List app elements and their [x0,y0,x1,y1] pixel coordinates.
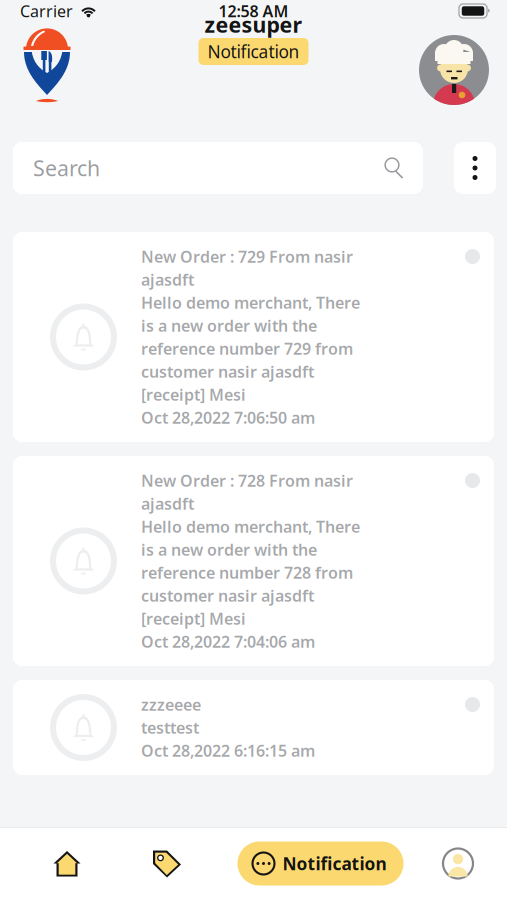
staticText: [receipt] Mesi [141,608,246,629]
button[interactable]: New Order : 728 From nasir [13,456,494,666]
button[interactable]: New Order : 729 From nasir [13,232,494,442]
button[interactable]: Account [424,831,492,895]
staticText: reference number 728 from [141,562,353,583]
staticText: ajasdft [141,493,194,514]
staticText: 12:58 AM [218,0,288,22]
staticText: Hello demo merchant, There [141,292,360,313]
staticText: is a new order with the [141,315,317,336]
staticText: Notification [207,40,299,63]
staticText: is a new order with the [141,539,317,560]
staticText: New Order : 728 From nasir [141,470,353,491]
staticText: Notification [282,852,386,875]
button[interactable]: zzzeeee [13,680,494,775]
button[interactable]: More options [454,142,496,194]
staticText: [receipt] Mesi [141,384,246,405]
button[interactable]: Profile [419,35,489,105]
staticText: customer nasir ajasdft [141,361,314,382]
staticText: ajasdft [141,269,194,290]
staticText: reference number 729 from [141,338,353,359]
staticText: customer nasir ajasdft [141,585,314,606]
staticText: zzzeeee [141,694,201,715]
staticText: testtest [141,717,199,738]
staticText: Oct 28,2022 7:06:50 am [141,407,315,428]
staticText: Oct 28,2022 6:16:15 am [141,740,315,761]
staticText: Carrier [20,0,73,22]
button[interactable]: Offers [117,831,217,895]
button[interactable]: Home [17,831,117,895]
staticText: Oct 28,2022 7:04:06 am [141,631,315,652]
staticText: Search [33,154,100,182]
button[interactable]: Search [13,142,423,194]
staticText: zeesuper [204,10,302,39]
button[interactable]: Notification [237,841,403,885]
staticText: Hello demo merchant, There [141,516,360,537]
staticText: New Order : 729 From nasir [141,246,353,267]
